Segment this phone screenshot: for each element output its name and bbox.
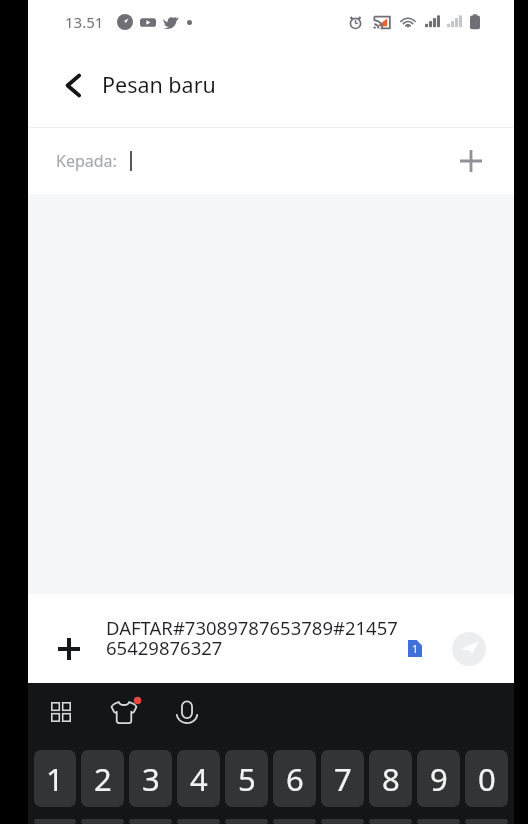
button[interactable]: 1	[34, 750, 76, 807]
button[interactable]: 9	[417, 750, 460, 807]
staticText: 9	[430, 758, 448, 800]
button[interactable]: Add recipient	[447, 137, 495, 185]
button[interactable]: 7	[321, 750, 364, 807]
button[interactable]: 2	[81, 750, 124, 807]
button[interactable]: 8	[369, 750, 412, 807]
button[interactable]	[225, 819, 268, 824]
staticText: 1	[46, 758, 64, 800]
button[interactable]	[465, 819, 508, 824]
staticText: 13.51	[65, 12, 104, 32]
button[interactable]	[369, 819, 412, 824]
staticText: 0	[478, 758, 496, 800]
button[interactable]	[321, 819, 364, 824]
button[interactable]: 3	[129, 750, 172, 807]
button[interactable]: 0	[465, 750, 508, 807]
button[interactable]: Voice input	[165, 690, 209, 734]
button[interactable]: 5	[225, 750, 268, 807]
staticText: 2	[94, 758, 112, 800]
staticText: 4	[190, 758, 208, 800]
button[interactable]	[417, 819, 460, 824]
button[interactable]	[129, 819, 172, 824]
button[interactable]: 4	[177, 750, 220, 807]
button[interactable]: Send	[452, 632, 486, 666]
button[interactable]: Stickers	[102, 690, 146, 734]
staticText: 3	[142, 758, 160, 800]
staticText: 5	[238, 758, 256, 800]
button[interactable]: Add attachment	[45, 625, 93, 673]
staticText: 1	[412, 641, 419, 656]
staticText: Kepada:	[56, 150, 117, 172]
button[interactable]	[273, 819, 316, 824]
staticText: 7	[334, 758, 352, 800]
staticText: 6	[286, 758, 304, 800]
staticText: 8	[382, 758, 400, 800]
button[interactable]	[177, 819, 220, 824]
button[interactable]: Back	[51, 63, 95, 107]
button[interactable]: 6	[273, 750, 316, 807]
button[interactable]	[34, 819, 76, 824]
button[interactable]: Keyboard layouts	[39, 690, 83, 734]
button[interactable]	[81, 819, 124, 824]
staticText: DAFTAR#73089787653789#21457 65429876327	[106, 615, 398, 660]
staticText: Pesan baru	[102, 70, 216, 99]
